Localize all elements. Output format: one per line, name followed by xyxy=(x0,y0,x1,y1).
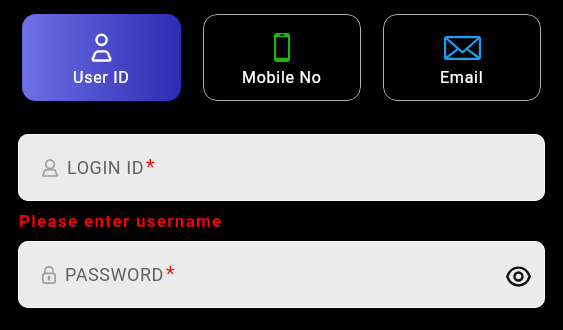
button[interactable]: LOGIN ID * xyxy=(18,134,545,201)
button[interactable]: PASSWORD * xyxy=(18,241,545,308)
staticText: PASSWORD * xyxy=(65,262,176,287)
button[interactable]: Email xyxy=(383,14,541,101)
staticText: Mobile No xyxy=(242,68,322,87)
button[interactable]: Mobile No xyxy=(203,14,361,101)
staticText: Please enter username xyxy=(19,211,223,231)
staticText: LOGIN ID * xyxy=(67,155,156,180)
staticText: Email xyxy=(440,68,484,87)
button[interactable]: Show password xyxy=(500,257,537,292)
button[interactable]: User ID xyxy=(22,14,181,101)
staticText: User ID xyxy=(73,68,130,87)
